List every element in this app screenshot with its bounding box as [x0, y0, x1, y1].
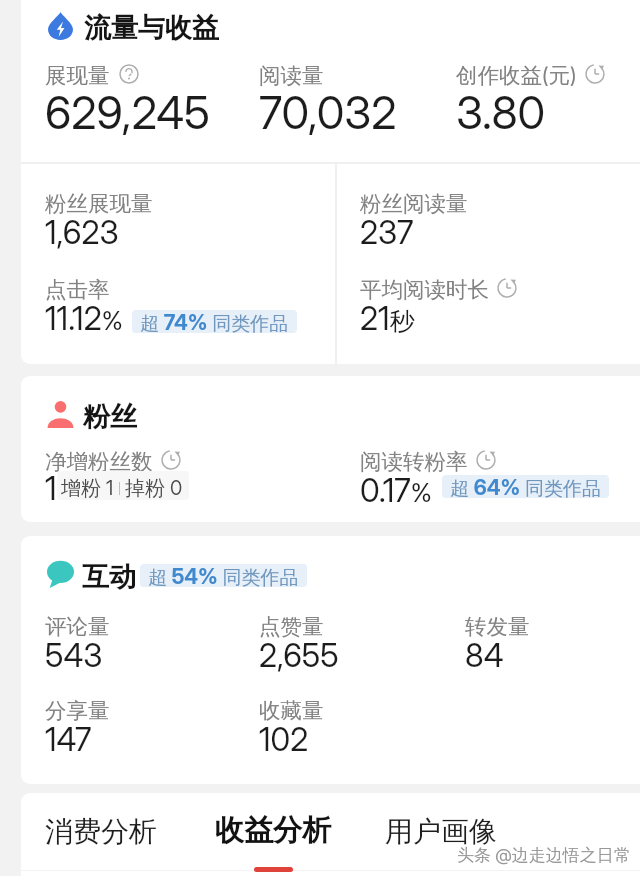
- staticText: 收益分析: [215, 812, 331, 849]
- button[interactable]: 超 54% 同类作品: [140, 564, 307, 587]
- button[interactable]: 收益分析: [209, 806, 337, 855]
- staticText: 629,245: [45, 85, 211, 139]
- staticText: 掉粉 0: [125, 476, 183, 501]
- button[interactable]: 超 64% 同类作品: [442, 475, 609, 498]
- staticText: 2,655: [259, 636, 339, 675]
- other: 互动: [47, 560, 74, 588]
- other: 流量: [48, 12, 73, 40]
- staticText: 543: [45, 636, 103, 675]
- staticText: 阅读转粉率: [360, 448, 468, 475]
- staticText: 分享量: [45, 697, 110, 724]
- staticText: 增粉 1: [61, 476, 114, 501]
- staticText: 粉丝展现量: [45, 190, 153, 217]
- staticText: 流量与收益: [84, 11, 219, 45]
- staticText: 用户画像: [385, 814, 497, 849]
- button[interactable]: 超 74% 同类作品: [132, 310, 297, 333]
- staticText: 超 54% 同类作品: [148, 564, 299, 587]
- staticText: 平均阅读时长: [360, 276, 489, 303]
- staticText: 粉丝阅读量: [360, 190, 468, 217]
- staticText: 11.12%: [45, 299, 123, 338]
- button[interactable]: 消费分析: [39, 808, 163, 855]
- staticText: 超 64% 同类作品: [450, 475, 601, 498]
- staticText: 102: [259, 720, 309, 759]
- staticText: 1: [45, 469, 57, 508]
- button[interactable]: 用户画像: [379, 808, 503, 855]
- staticText: 70,032: [259, 85, 397, 139]
- staticText: 237: [360, 213, 414, 252]
- staticText: 转发量: [465, 613, 530, 640]
- staticText: 点赞量: [259, 613, 324, 640]
- staticText: 收藏量: [259, 697, 324, 724]
- staticText: 84: [465, 636, 504, 675]
- staticText: 评论量: [45, 613, 110, 640]
- staticText: 展现量: [45, 62, 110, 89]
- staticText: 21秒: [360, 299, 415, 338]
- staticText: 1,623: [45, 213, 119, 252]
- staticText: 创作收益(元): [456, 62, 577, 89]
- staticText: 超 74% 同类作品: [140, 310, 289, 333]
- staticText: 点击率: [45, 276, 110, 303]
- staticText: 粉丝: [83, 400, 137, 434]
- other: 粉丝: [47, 399, 74, 428]
- staticText: 互动: [82, 560, 136, 594]
- staticText: 净增粉丝数: [45, 448, 153, 475]
- staticText: 头条 @边走边悟之日常: [457, 845, 631, 867]
- staticText: 阅读量: [259, 62, 324, 89]
- staticText: 消费分析: [45, 814, 157, 849]
- staticText: 147: [45, 720, 92, 759]
- staticText: 3.80: [456, 85, 546, 139]
- staticText: 0.17%: [360, 471, 432, 510]
